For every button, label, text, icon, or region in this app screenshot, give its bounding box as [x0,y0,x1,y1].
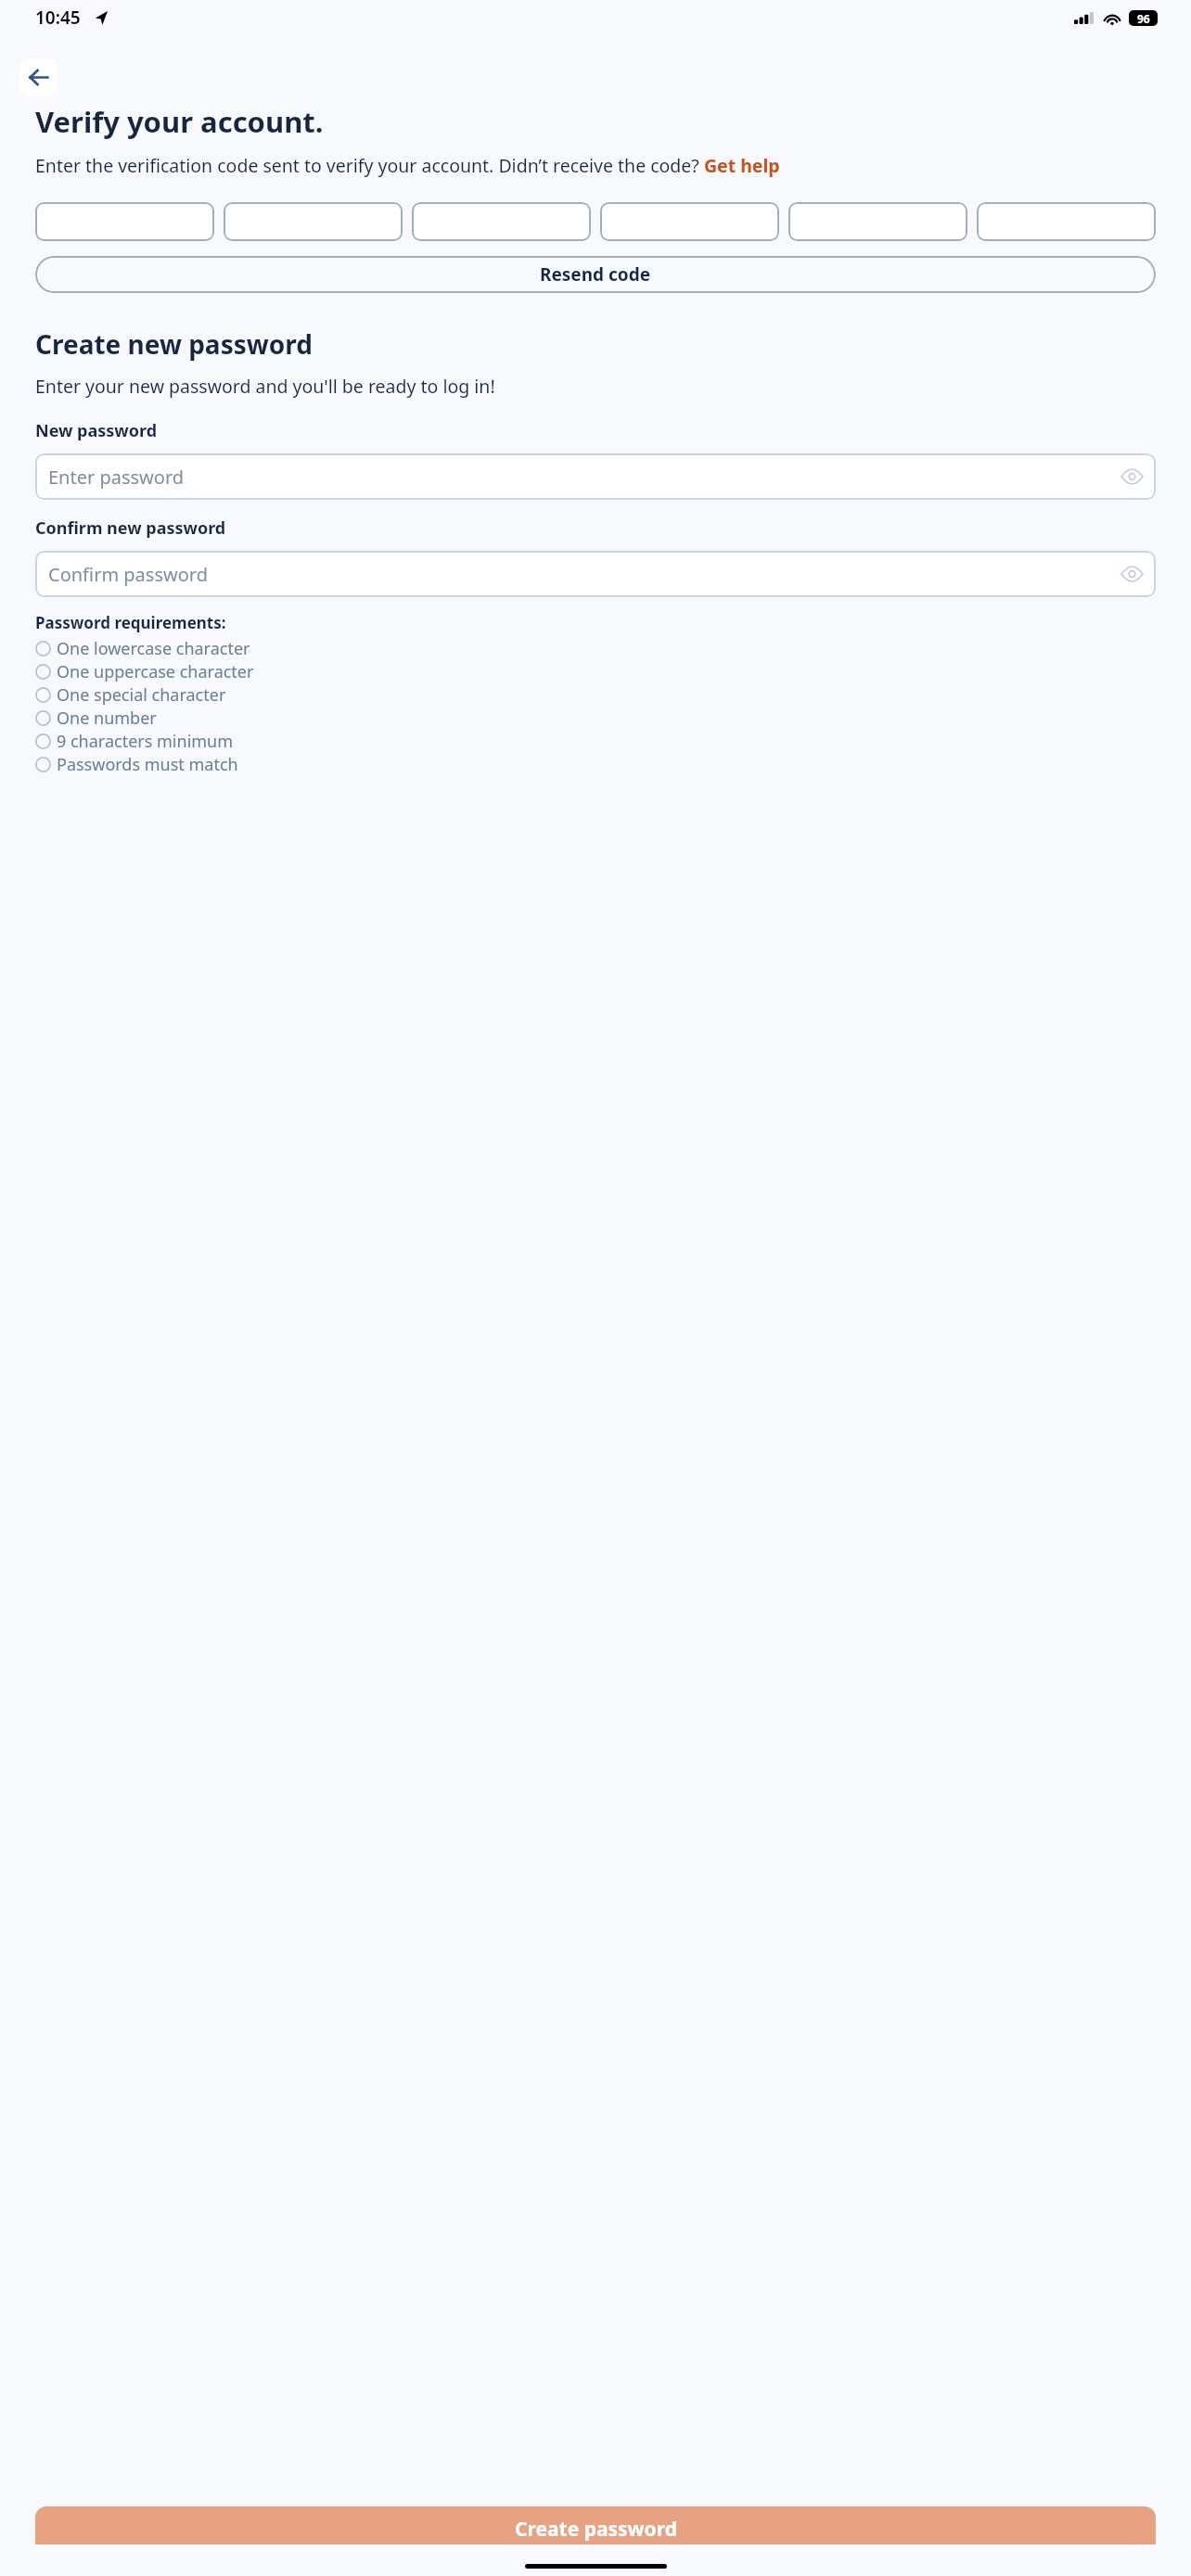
button[interactable]: Resend code [35,256,1156,293]
staticText: 9 characters minimum [57,730,234,753]
button[interactable]: One lowercase character [35,637,1156,660]
other: Show password [1121,567,1143,581]
button[interactable]: One special character [35,683,1156,707]
staticText: 96 [1137,11,1150,26]
button[interactable]: Back [19,58,58,96]
button[interactable]: Passwords must match [35,753,1156,776]
staticText: Verify your account. [35,102,324,141]
button[interactable]: Create password [35,2506,1156,2544]
staticText: 10:45 [35,6,81,30]
staticText: Create new password [35,326,313,362]
staticText: Confirm password [48,562,208,587]
staticText: One uppercase character [57,660,254,683]
button[interactable]: Code digit [788,202,967,241]
button[interactable]: Code digit [977,202,1156,241]
staticText: Enter your new password and you'll be re… [35,374,495,399]
button[interactable]: Code digit [224,202,403,241]
button[interactable]: Code digit [35,202,214,241]
staticText: Create password [515,2516,677,2543]
button[interactable]: One uppercase character [35,660,1156,683]
staticText: Password requirements: [35,612,226,633]
staticText: Enter the verification code sent to veri… [35,153,780,178]
staticText: One lowercase character [57,637,250,660]
button[interactable]: Confirm password [35,551,1156,597]
staticText: Enter password [48,465,185,490]
button[interactable]: One number [35,707,1156,730]
button[interactable]: 9 characters minimum [35,730,1156,753]
other: Show password [1121,469,1143,484]
staticText: One number [57,707,157,730]
button[interactable]: Code digit [412,202,591,241]
button[interactable]: Enter password [35,453,1156,500]
staticText: New password [35,419,158,442]
staticText: One special character [57,683,226,707]
button[interactable]: Code digit [600,202,779,241]
staticText: Passwords must match [57,753,238,776]
staticText: Confirm new password [35,516,226,540]
staticText: Resend code [540,262,651,287]
